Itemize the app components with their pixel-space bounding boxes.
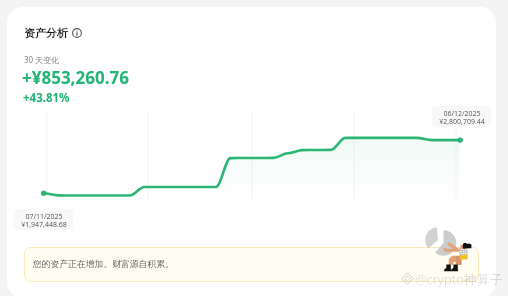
button[interactable]: 您的资产正在增加。财富源自积累。 [24, 247, 479, 282]
staticText: 您的资产正在增加。财富源自积累。 [33, 259, 174, 270]
staticText: 07/11/2025 ¥1,947,448.68 [21, 212, 67, 229]
staticText: 资产分析 [24, 26, 68, 40]
staticText: @crypto神算子 [415, 270, 503, 288]
staticText: +43.81% [23, 90, 70, 106]
staticText: 06/12/2025 ¥2,800,709.44 [439, 109, 485, 126]
staticText: 30 天变化 [24, 54, 60, 65]
staticText: +¥853,260.76 [22, 66, 129, 89]
